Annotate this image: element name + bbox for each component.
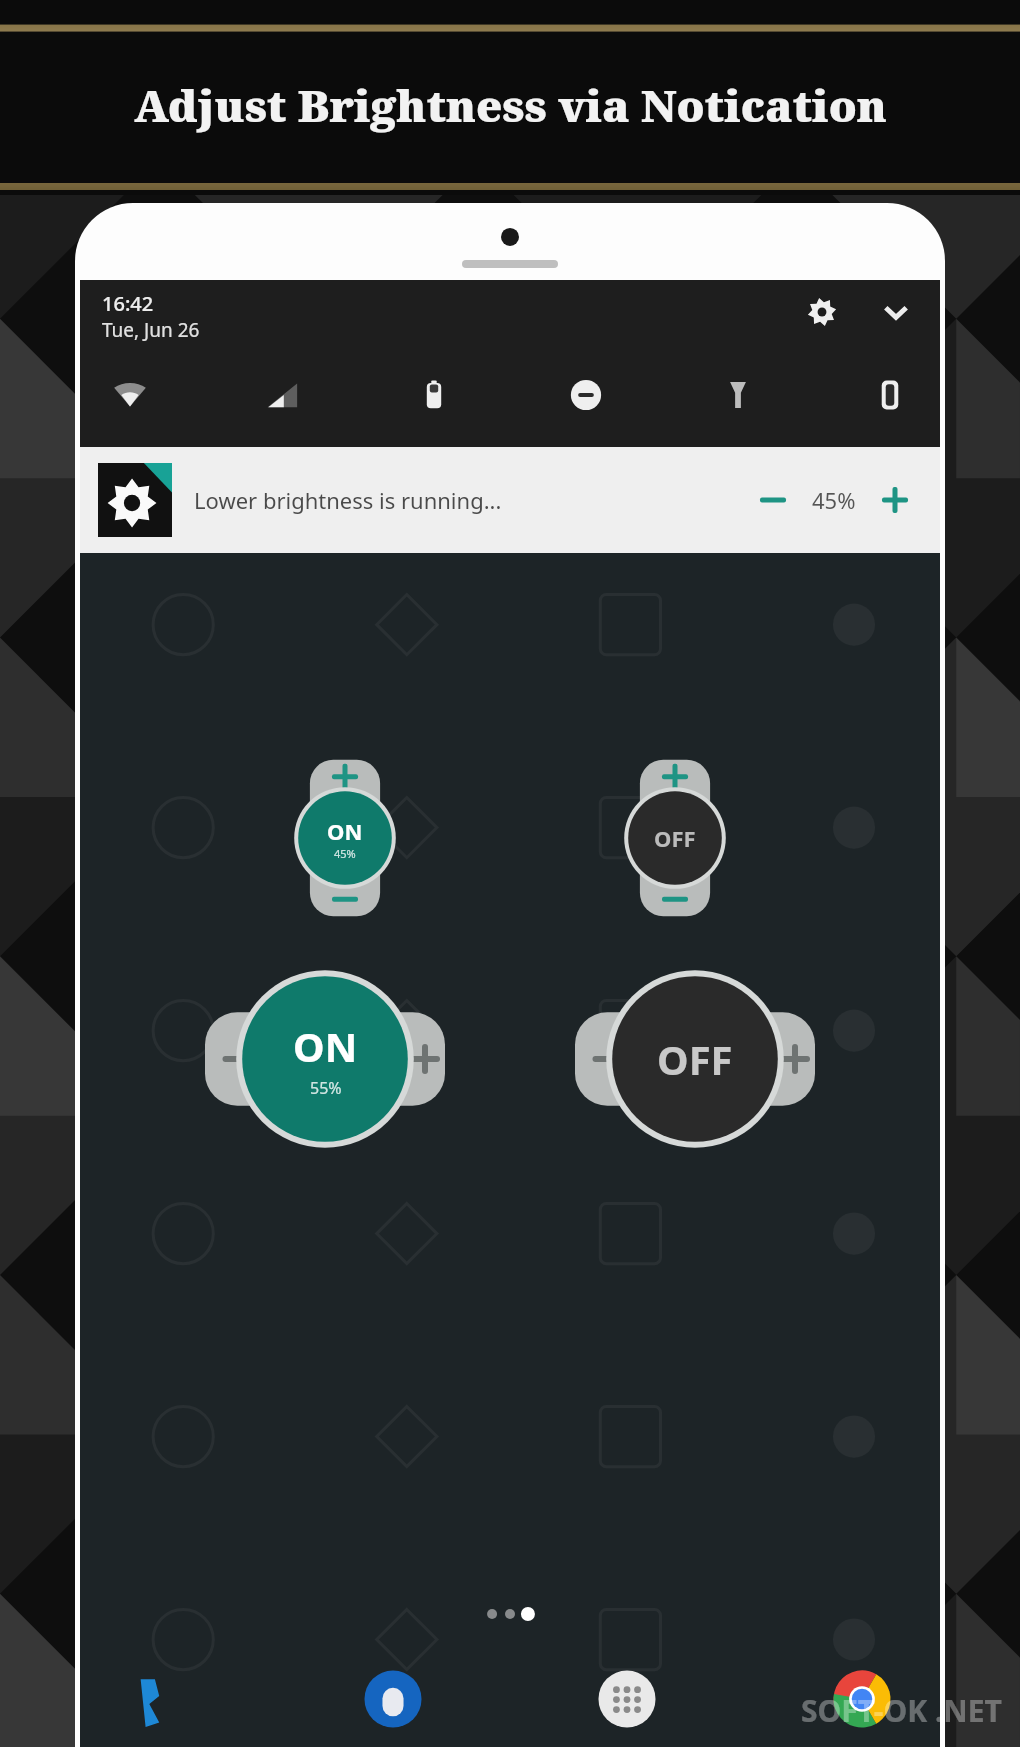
staticText: 55% — [310, 1077, 342, 1099]
button[interactable]: Do not disturb — [558, 367, 614, 423]
button[interactable]: Decrease brightness — [746, 473, 800, 527]
button[interactable]: Brightness widget off — [610, 753, 740, 923]
button[interactable]: Chrome — [820, 1657, 904, 1741]
button[interactable]: Brightness large widget off — [570, 969, 820, 1149]
staticText: Adjust Brightness via Notication — [134, 75, 887, 135]
button[interactable]: Mobile data — [254, 367, 310, 423]
staticText: ON — [293, 1019, 358, 1073]
button[interactable]: Auto rotate — [862, 367, 918, 423]
staticText: Tue, Jun 26 — [102, 317, 200, 343]
staticText: SOFT-OK .NET — [801, 1690, 1002, 1731]
staticText: 16:42 — [102, 290, 154, 317]
staticText: OFF — [654, 823, 696, 853]
button[interactable]: Increase brightness — [868, 473, 922, 527]
button[interactable]: Phone — [116, 1657, 200, 1741]
button[interactable]: Messages — [351, 1657, 435, 1741]
button[interactable]: Brightness widget on — [280, 753, 410, 923]
button[interactable]: App drawer — [585, 1657, 669, 1741]
button[interactable]: Brightness large widget on — [200, 969, 450, 1149]
button[interactable]: Flashlight — [710, 367, 766, 423]
staticText: 45% — [334, 846, 356, 861]
button[interactable]: Wi-Fi — [102, 367, 158, 423]
staticText: 45% — [812, 485, 856, 515]
staticText: ON — [327, 816, 363, 846]
button[interactable]: Lower brightness is running... — [80, 447, 940, 553]
staticText: Lower brightness is running... — [194, 485, 746, 515]
staticText: OFF — [657, 1032, 733, 1086]
button[interactable]: Expand — [874, 290, 918, 334]
button[interactable]: Settings — [800, 290, 844, 334]
button[interactable]: Battery saver — [406, 367, 462, 423]
